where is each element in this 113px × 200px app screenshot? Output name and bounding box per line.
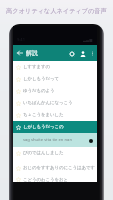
button[interactable]: びのではんしました (13, 147, 97, 159)
staticText: こどうのわこうをおと (23, 177, 68, 182)
staticText: ゆうだものよう (23, 88, 55, 94)
button[interactable]: Account (77, 48, 88, 59)
button[interactable]: ちょこうをまいした (13, 109, 97, 121)
staticText: ちょこうをまいした (23, 112, 64, 118)
button[interactable]: Play audio (86, 136, 95, 145)
button[interactable]: More options (88, 49, 96, 57)
staticText: ▂▃▅ (83, 37, 93, 42)
staticText: いちばんかんになっこう (23, 100, 73, 106)
staticText: 9:41 (17, 37, 25, 42)
button[interactable]: Back (15, 48, 25, 58)
staticText: しがしもうだっこの (23, 124, 64, 130)
staticText: 高クオリティな人ネイティブの音声 (6, 7, 107, 15)
staticText: しかしもうだって (23, 76, 59, 82)
button[interactable]: sag shuite vita tie en nan (13, 133, 97, 147)
button[interactable]: ゆうだものよう (13, 85, 97, 97)
button[interactable]: いちばんかんになっこう (13, 97, 97, 109)
staticText: sag shuite vita tie en nan (23, 137, 73, 143)
staticText: おじのをすすありのにこうはあです (23, 165, 95, 171)
button[interactable]: Settings (66, 48, 77, 59)
button[interactable]: しかしもうだって (13, 73, 97, 85)
staticText: びのではんしました (23, 150, 64, 156)
staticText: しすすますの (23, 64, 50, 70)
staticText: 解説 (26, 49, 38, 57)
button[interactable]: しすすますの (13, 61, 97, 73)
button[interactable]: しがしもうだっこの (13, 121, 97, 133)
button[interactable]: おじのをすすありのにこうはあです (13, 159, 97, 177)
button[interactable]: こどうのわこうをおと (13, 177, 97, 182)
